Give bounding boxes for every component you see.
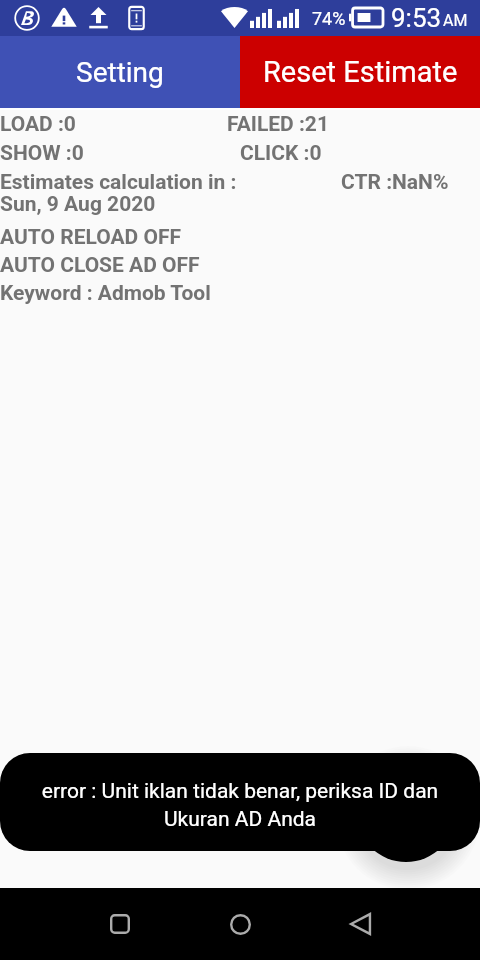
staticText: AUTO RELOAD OFF — [0, 225, 181, 250]
button[interactable]: Home — [212, 896, 268, 952]
staticText: FAILED :21 — [227, 112, 329, 137]
staticText: CLICK :0 — [240, 141, 322, 166]
button[interactable]: Back — [332, 896, 388, 952]
button[interactable]: Add — [356, 762, 456, 862]
staticText: Estimates calculation in : Sun, 9 Aug 20… — [0, 170, 237, 217]
staticText: Keyword : Admob Tool — [0, 281, 211, 306]
button[interactable]: Recent apps — [92, 896, 148, 952]
staticText: Reset Estimate — [263, 55, 458, 89]
staticText: SHOW :0 — [0, 141, 84, 166]
button[interactable]: Reset Estimate — [240, 36, 480, 108]
staticText: CTR :NaN% — [341, 170, 449, 195]
button[interactable]: Setting — [0, 36, 240, 108]
staticText: AUTO CLOSE AD OFF — [0, 253, 200, 278]
staticText: LOAD :0 — [0, 112, 76, 137]
staticText: 9:53 — [391, 3, 442, 33]
staticText: Setting — [76, 56, 164, 89]
staticText: 74% — [312, 8, 346, 29]
staticText: AM — [443, 11, 468, 30]
staticText: error : Unit iklan tidak benar, periksa … — [38, 779, 442, 831]
